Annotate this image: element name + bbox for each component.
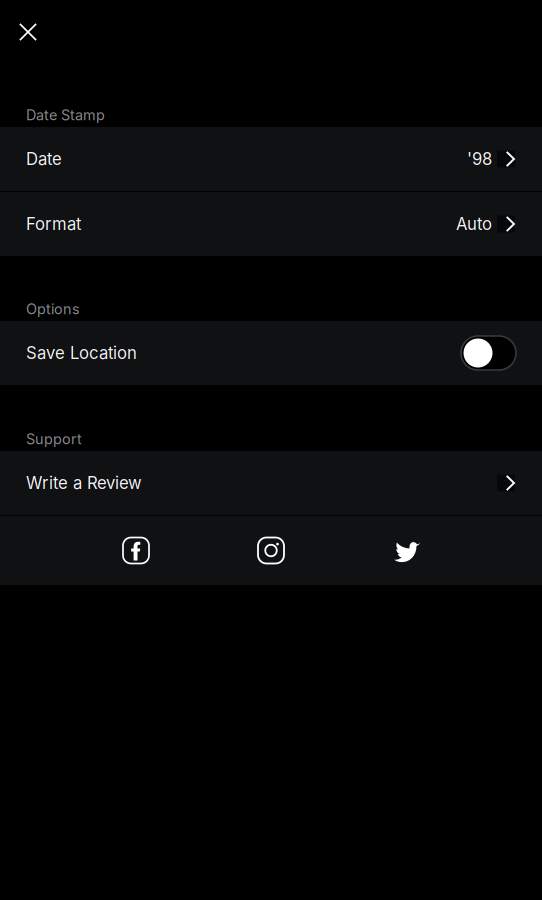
button[interactable]: Instagram	[203, 516, 338, 585]
button[interactable]: Format	[0, 192, 542, 256]
button[interactable]: Save Location	[0, 321, 542, 385]
button[interactable]: Facebook	[68, 516, 203, 585]
button[interactable]: Date	[0, 127, 542, 191]
button[interactable]: Close	[0, 0, 56, 60]
staticText: Options	[26, 300, 80, 318]
button[interactable]: Write a Review	[0, 451, 542, 515]
staticText: Format	[26, 214, 81, 234]
staticText: '98	[467, 149, 492, 169]
staticText: Date Stamp	[26, 106, 105, 124]
staticText: Save Location	[26, 343, 137, 363]
staticText: Auto	[456, 214, 492, 234]
staticText: Date	[26, 149, 62, 169]
staticText: Write a Review	[26, 473, 142, 493]
button[interactable]: Twitter	[338, 516, 473, 585]
staticText: Support	[26, 430, 82, 448]
